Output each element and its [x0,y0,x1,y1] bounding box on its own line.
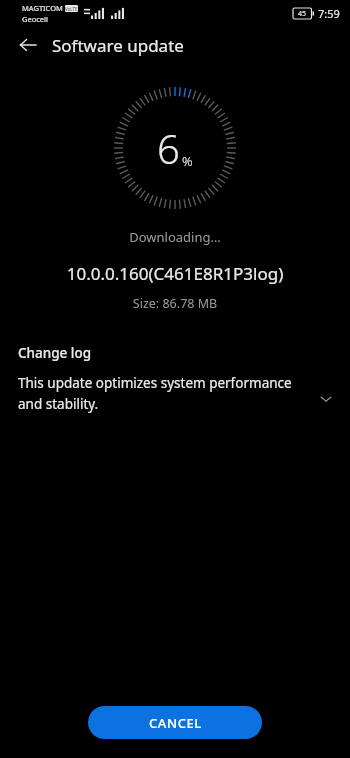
staticText: Geocell [22,14,48,24]
button[interactable]: CANCEL [88,706,262,739]
staticText: MAGTICOM [22,3,63,13]
staticText: 45 [298,9,307,19]
button[interactable]: This update optimizes system performance… [0,374,350,413]
staticText: Change log [18,344,92,362]
button[interactable]: Back [12,29,44,61]
staticText: 7:59 [318,6,340,21]
staticText: 10.0.0.160(C461E8R1P3log) [0,262,350,285]
staticText: CANCEL [149,714,202,732]
other: Expand change log [314,387,338,411]
staticText: 6 [157,121,180,175]
staticText: Software update [52,34,184,57]
staticText: % [182,152,193,170]
staticText: Downloading… [0,228,350,246]
staticText: VoLTE [65,6,78,12]
staticText: Size: 86.78 MB [0,295,350,312]
staticText: This update optimizes system performance… [18,374,314,413]
